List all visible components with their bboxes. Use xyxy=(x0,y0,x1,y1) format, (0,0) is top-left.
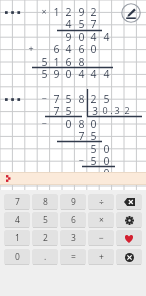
button[interactable]: Favorite xyxy=(116,230,142,246)
staticText: 5 xyxy=(90,154,97,166)
staticText: × xyxy=(41,5,47,17)
staticText: 1 xyxy=(53,5,60,17)
staticText: 7 xyxy=(78,129,85,141)
button[interactable]: 6 xyxy=(60,212,86,228)
button[interactable]: 5 xyxy=(32,212,58,228)
staticText: × xyxy=(99,214,104,226)
button[interactable]: Problem options xyxy=(5,96,20,103)
staticText: 3 xyxy=(71,232,76,244)
staticText: 0 xyxy=(78,30,85,42)
staticText: 6 xyxy=(71,214,76,226)
staticText: 4 xyxy=(78,67,85,79)
staticText: 1 xyxy=(15,232,20,244)
button[interactable]: Backspace xyxy=(116,194,142,210)
staticText: 6 xyxy=(65,55,72,67)
staticText: 8 xyxy=(78,117,85,129)
staticText: + xyxy=(99,251,104,263)
staticText: 0 xyxy=(103,154,110,166)
button[interactable]: 7 xyxy=(4,194,30,210)
staticText: − xyxy=(78,154,84,166)
staticText: 0 xyxy=(103,142,110,154)
staticText: 9 xyxy=(71,196,76,208)
staticText: 6 xyxy=(53,42,60,54)
staticText: − xyxy=(41,117,47,129)
staticText: 3 xyxy=(114,104,120,116)
staticText: ÷ xyxy=(99,196,104,208)
staticText: 7 xyxy=(53,104,60,116)
staticText: 0 xyxy=(90,42,97,54)
staticText: 5 xyxy=(90,142,97,154)
staticText: 0 xyxy=(90,117,97,129)
staticText: 8 xyxy=(43,196,48,208)
staticText: 8 xyxy=(78,92,85,104)
staticText: . xyxy=(110,104,113,116)
staticText: 4 xyxy=(65,17,72,29)
staticText: = xyxy=(71,251,76,263)
staticText: 5 xyxy=(41,67,48,79)
button[interactable]: 2 xyxy=(32,230,58,246)
staticText: 0 xyxy=(15,251,20,263)
staticText: 6 xyxy=(78,42,85,54)
staticText: − xyxy=(41,92,47,104)
staticText: 4 xyxy=(90,67,97,79)
staticText: 9 xyxy=(78,5,85,17)
button[interactable]: − xyxy=(88,230,114,246)
staticText: 1 xyxy=(53,55,60,67)
staticText: 4 xyxy=(65,42,72,54)
staticText: 7 xyxy=(53,92,60,104)
staticText: 5 xyxy=(41,55,48,67)
staticText: . xyxy=(44,251,47,263)
button[interactable]: Problem options xyxy=(5,9,20,16)
staticText: 3 xyxy=(92,104,98,116)
button[interactable]: ÷ xyxy=(88,194,114,210)
staticText: 5 xyxy=(78,17,85,29)
button[interactable]: Handwriting input xyxy=(121,3,141,23)
button[interactable] xyxy=(0,172,146,185)
staticText: 0 xyxy=(65,67,72,79)
button[interactable]: = xyxy=(60,249,86,265)
staticText: 0 xyxy=(65,117,72,129)
staticText: 7 xyxy=(15,196,20,208)
button[interactable]: 1 xyxy=(4,230,30,246)
button[interactable]: 0 xyxy=(4,249,30,265)
staticText: 4 xyxy=(103,30,110,42)
staticText: 2 xyxy=(90,5,97,17)
staticText: 4 xyxy=(15,214,20,226)
staticText: 4 xyxy=(90,30,97,42)
button[interactable]: 8 xyxy=(32,194,58,210)
staticText: 5 xyxy=(103,92,110,104)
button[interactable]: Clear xyxy=(116,249,142,265)
button[interactable]: 3 xyxy=(60,230,86,246)
staticText: 5 xyxy=(65,104,72,116)
staticText: 2 xyxy=(65,5,72,17)
staticText: + xyxy=(28,42,34,54)
button[interactable]: Settings xyxy=(116,212,142,228)
button[interactable]: × xyxy=(88,212,114,228)
staticText: 0 xyxy=(103,166,110,178)
staticText: 0 xyxy=(102,104,108,116)
staticText: 8 xyxy=(78,55,85,67)
staticText: 2 xyxy=(90,92,97,104)
button[interactable]: . xyxy=(32,249,58,265)
staticText: 5 xyxy=(65,92,72,104)
button[interactable]: + xyxy=(88,249,114,265)
staticText: 4 xyxy=(103,67,110,79)
button[interactable]: 4 xyxy=(4,212,30,228)
staticText: 9 xyxy=(65,30,72,42)
staticText: 5 xyxy=(90,129,97,141)
staticText: 7 xyxy=(90,17,97,29)
staticText: − xyxy=(99,232,104,244)
staticText: 9 xyxy=(53,67,60,79)
staticText: 2 xyxy=(124,104,130,116)
button[interactable]: 9 xyxy=(60,194,86,210)
staticText: 5 xyxy=(43,214,48,226)
staticText: 2 xyxy=(43,232,48,244)
